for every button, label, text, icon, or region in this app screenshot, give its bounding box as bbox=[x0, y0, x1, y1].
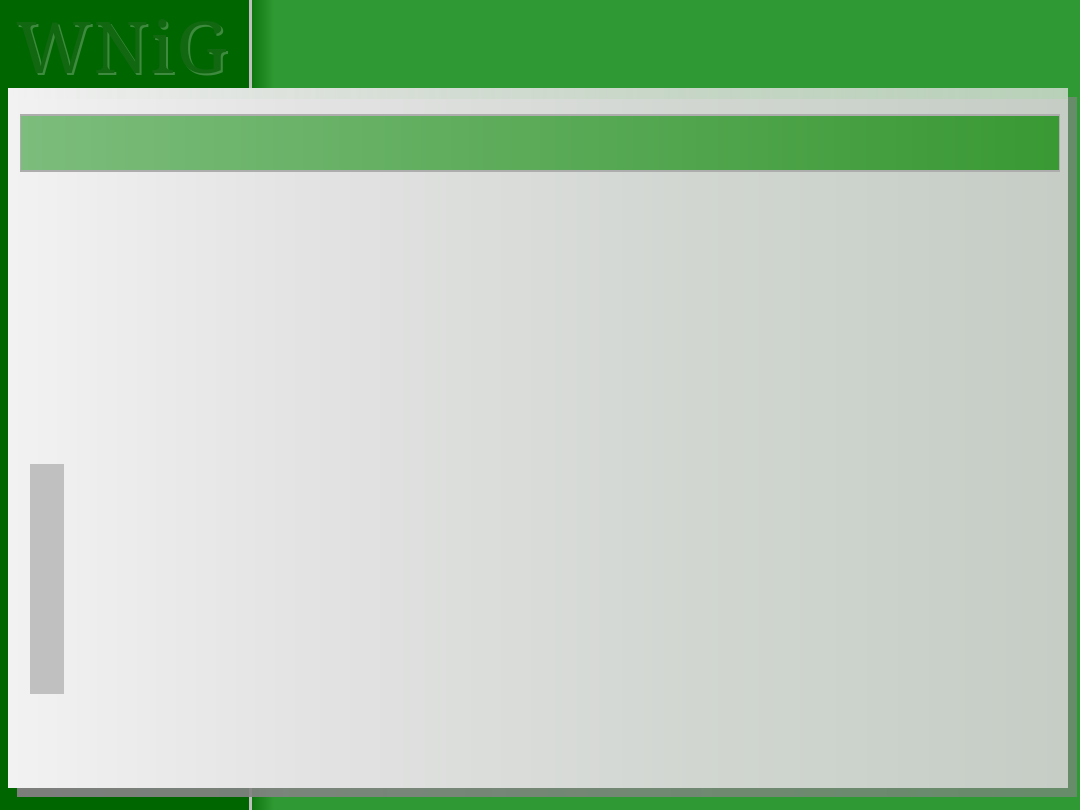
button[interactable]: WNiG home bbox=[10, 2, 242, 82]
staticText: WNiG bbox=[18, 0, 232, 78]
staticText: WNiG bbox=[16, 0, 230, 76]
button[interactable]: Navigation bar bbox=[20, 114, 1060, 172]
